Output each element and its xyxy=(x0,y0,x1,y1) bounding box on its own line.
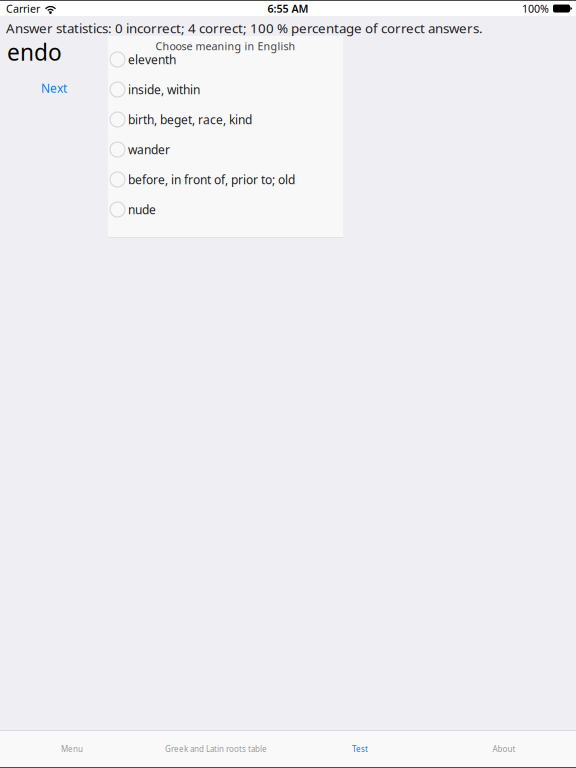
button[interactable]: before, in front of, prior to; old xyxy=(108,164,343,194)
staticText: nude xyxy=(128,201,156,217)
button[interactable]: About xyxy=(432,731,576,767)
staticText: Test xyxy=(352,744,368,754)
button[interactable]: Menu xyxy=(0,731,144,767)
button[interactable]: Greek and Latin roots table xyxy=(144,731,288,767)
button[interactable]: birth, beget, race, kind xyxy=(108,104,343,134)
staticText: Next xyxy=(41,80,67,96)
staticText: 100% xyxy=(522,1,549,16)
staticText: birth, beget, race, kind xyxy=(128,111,252,127)
button[interactable]: inside, within xyxy=(108,74,343,104)
staticText: endo xyxy=(7,37,62,67)
button[interactable]: eleventh xyxy=(108,44,343,74)
staticText: inside, within xyxy=(128,81,200,97)
staticText: Greek and Latin roots table xyxy=(165,744,267,754)
staticText: eleventh xyxy=(128,51,176,67)
staticText: About xyxy=(492,744,515,754)
button[interactable]: Test xyxy=(288,731,432,767)
button[interactable]: wander xyxy=(108,134,343,164)
staticText: Answer statistics: 0 incorrect; 4 correc… xyxy=(6,19,483,37)
staticText: Choose meaning in English xyxy=(155,39,295,53)
staticText: wander xyxy=(128,141,170,157)
button[interactable]: nude xyxy=(108,194,343,224)
staticText: Carrier xyxy=(6,1,40,16)
staticText: 6:55 AM xyxy=(267,1,308,16)
staticText: before, in front of, prior to; old xyxy=(128,171,295,187)
button[interactable]: Next xyxy=(0,77,108,99)
staticText: Menu xyxy=(61,744,83,754)
